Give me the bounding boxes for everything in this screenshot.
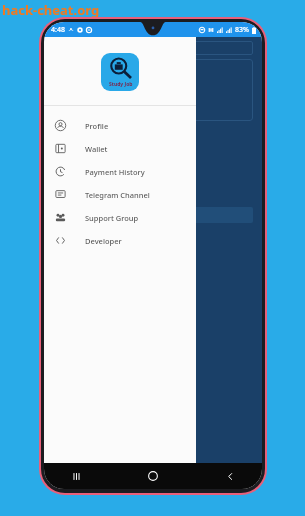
staticText: Payment History bbox=[85, 167, 145, 177]
staticText: hack-cheat.org bbox=[2, 1, 100, 19]
button[interactable]: Telegram Channel bbox=[44, 183, 196, 206]
staticText: 0 bbox=[53, 149, 253, 160]
staticText: Telegram Channel bbox=[85, 190, 150, 200]
button[interactable]: Developer bbox=[44, 229, 196, 252]
button[interactable]: Back bbox=[220, 466, 240, 486]
staticText: Study Job bbox=[109, 81, 133, 88]
staticText: Wallet bbox=[85, 144, 108, 154]
button[interactable]: Home bbox=[143, 466, 163, 486]
button[interactable]: Support Group bbox=[44, 206, 196, 229]
staticText: Support Group bbox=[85, 213, 139, 223]
staticText: 4:48 bbox=[51, 25, 65, 35]
staticText: Profile bbox=[85, 121, 109, 131]
staticText: REFER CODE bbox=[53, 171, 253, 185]
staticText: 83% bbox=[235, 25, 249, 35]
button[interactable]: Wallet bbox=[44, 137, 196, 160]
staticText: Developer bbox=[85, 236, 122, 246]
staticText: 91796984893 bbox=[53, 187, 253, 198]
button[interactable]: Recent apps bbox=[66, 466, 86, 486]
button[interactable] bbox=[53, 231, 93, 253]
button[interactable]: Profile bbox=[44, 114, 196, 137]
button[interactable]: Payment History bbox=[44, 160, 196, 183]
staticText: VALID CLICK bbox=[53, 132, 253, 146]
